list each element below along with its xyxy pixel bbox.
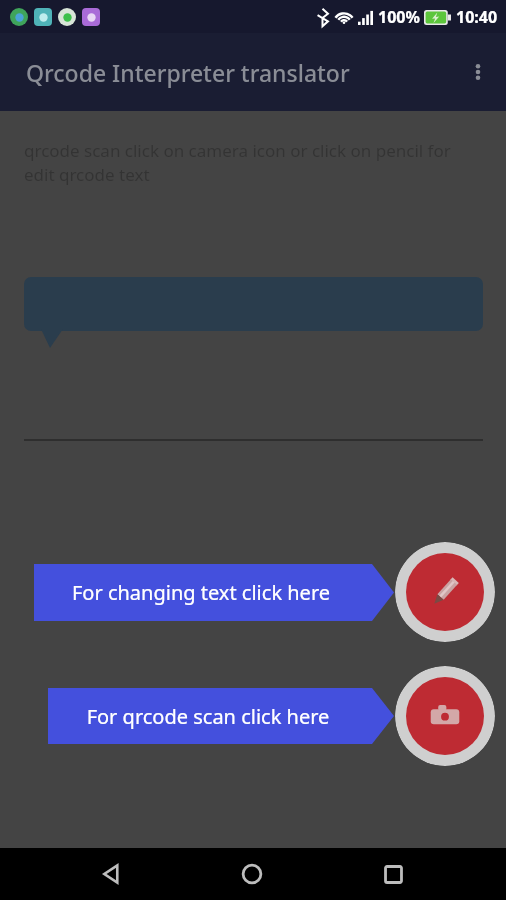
button[interactable]: Home: [224, 848, 280, 900]
staticText: For changing text click here: [34, 579, 368, 606]
staticText: Qrcode Interpreter translator: [26, 57, 350, 88]
button[interactable]: Back: [84, 848, 140, 900]
button[interactable]: Scan qrcode: [395, 666, 495, 766]
staticText: 100%: [378, 6, 420, 28]
staticText: qrcode scan click on camera icon or clic…: [24, 139, 476, 186]
button[interactable]: For changing text click here: [34, 564, 394, 621]
staticText: For qrcode scan click here: [48, 703, 368, 730]
button[interactable]: Edit text: [395, 542, 495, 642]
button[interactable]: More options: [450, 44, 506, 100]
button[interactable]: For qrcode scan click here: [48, 688, 394, 744]
button[interactable]: Recent apps: [365, 848, 421, 900]
staticText: 10:40: [456, 6, 498, 28]
button[interactable]: Qrcode text field: [24, 277, 483, 359]
